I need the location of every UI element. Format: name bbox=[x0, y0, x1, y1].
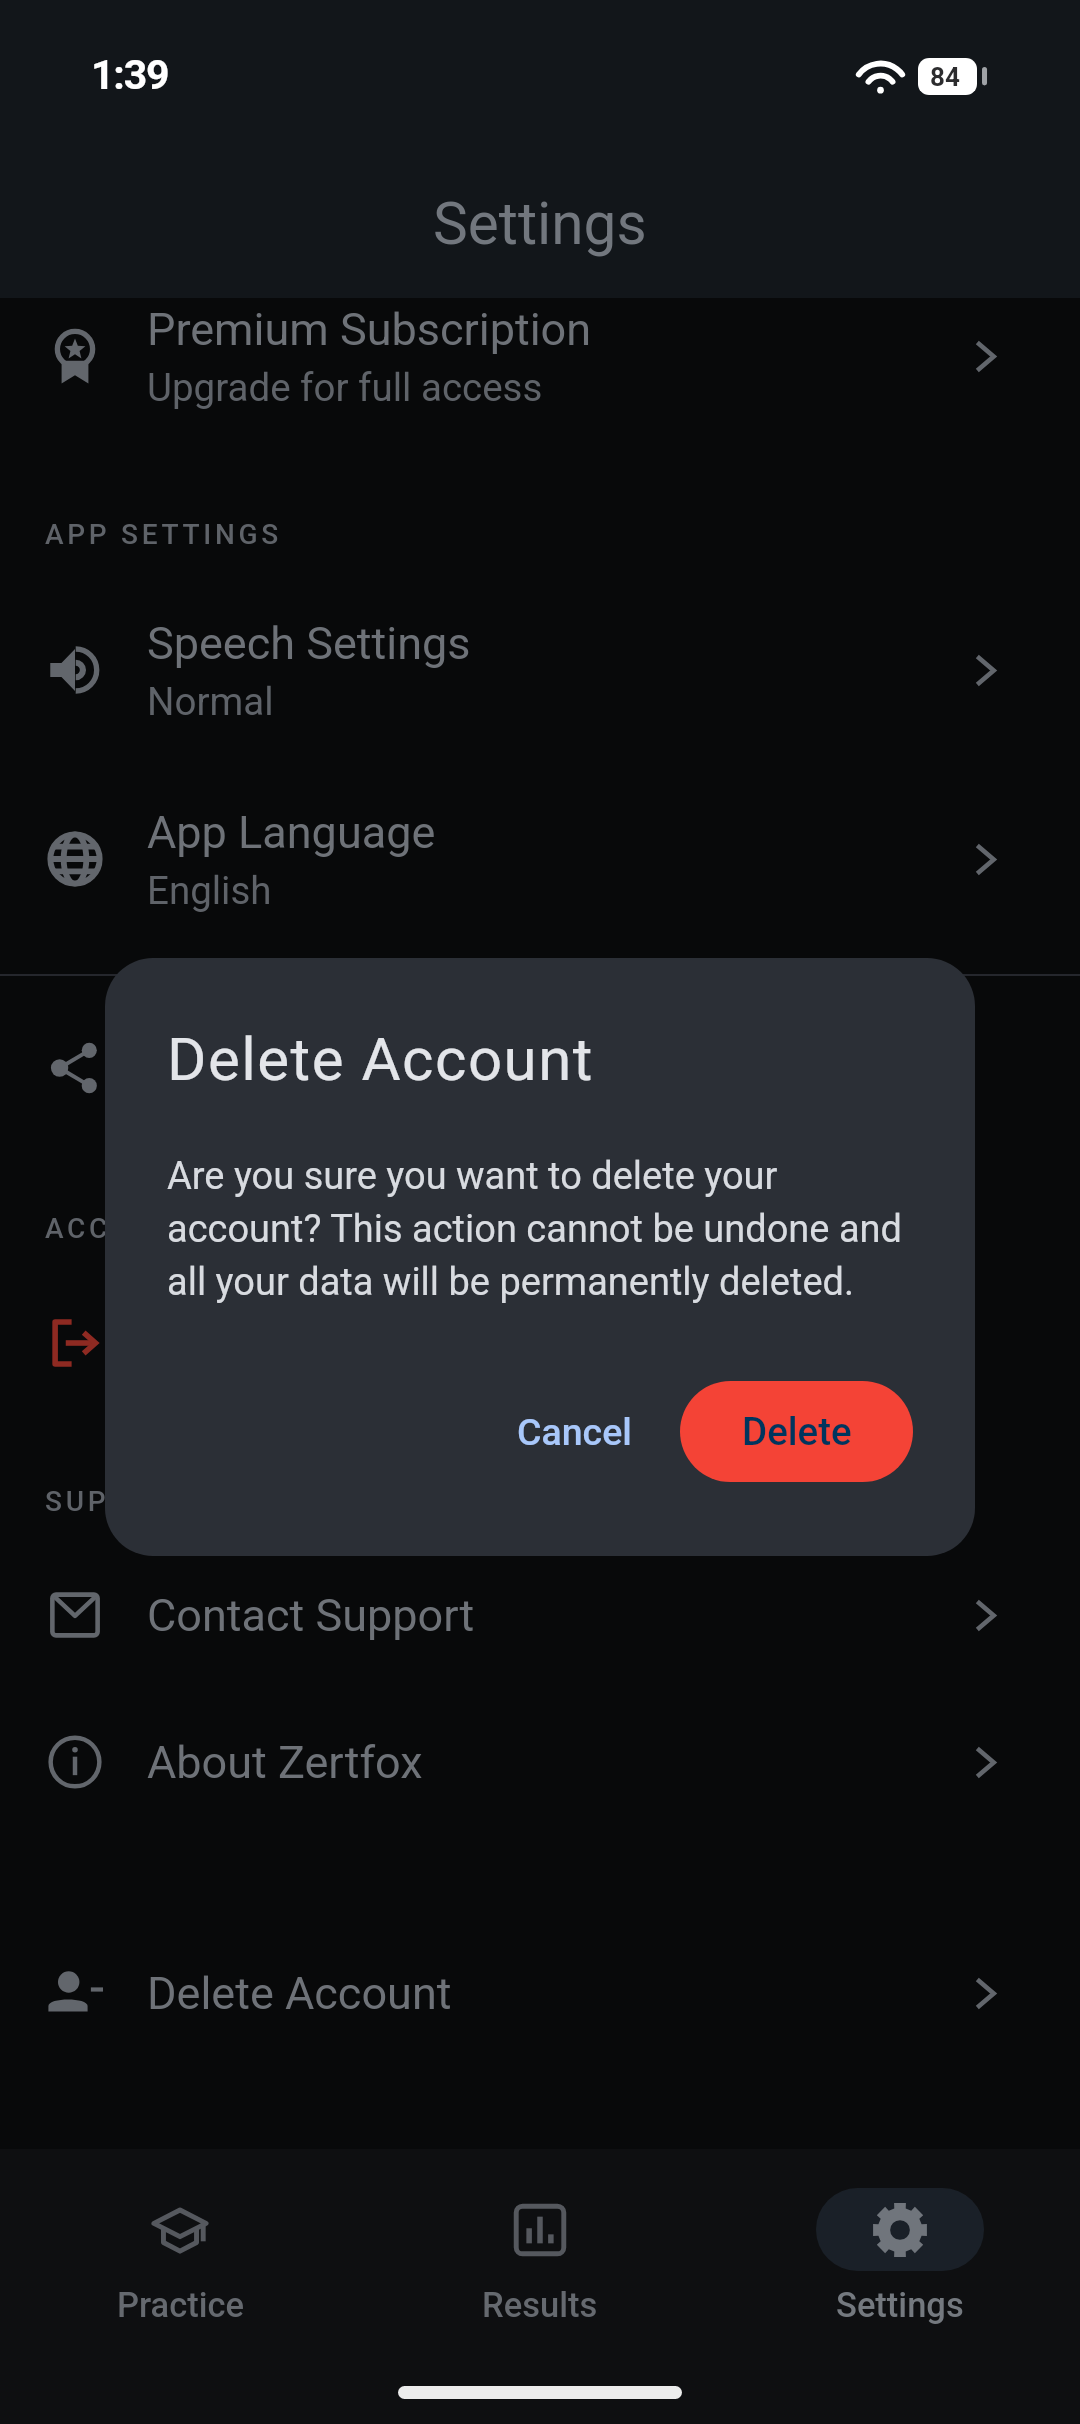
staticText: App Language bbox=[147, 806, 436, 859]
button[interactable]: Cancel bbox=[491, 1388, 658, 1476]
staticText: SUPPORT bbox=[45, 1485, 195, 1518]
button[interactable]: Delete bbox=[680, 1381, 913, 1482]
staticText: About Zertfox bbox=[147, 1736, 423, 1789]
button[interactable]: App Language bbox=[0, 793, 1080, 925]
staticText: Results bbox=[482, 2285, 598, 2325]
button[interactable]: Contact Support bbox=[0, 1549, 1080, 1681]
staticText: Speech Settings bbox=[147, 617, 471, 670]
button[interactable]: Speech Settings bbox=[0, 604, 1080, 736]
button[interactable]: About Zertfox bbox=[0, 1696, 1080, 1828]
button[interactable]: Settings bbox=[720, 2188, 1080, 2325]
staticText: Cancel bbox=[517, 1410, 632, 1454]
staticText: Practice bbox=[117, 2285, 244, 2325]
staticText: Tell your friends bbox=[147, 1077, 420, 1122]
staticText: English bbox=[147, 868, 272, 913]
staticText: 84 bbox=[930, 62, 960, 92]
button[interactable]: Results bbox=[360, 2188, 720, 2325]
staticText: ACCOUNT bbox=[45, 1212, 200, 1245]
button[interactable]: Sign Out bbox=[0, 1277, 1080, 1409]
staticText: APP SETTINGS bbox=[45, 518, 282, 551]
staticText: Delete Account bbox=[167, 1024, 594, 1094]
button[interactable]: Premium Subscription bbox=[0, 290, 1080, 422]
button[interactable]: Share App bbox=[0, 1002, 1080, 1134]
staticText: Settings bbox=[836, 2285, 964, 2325]
button[interactable]: Practice bbox=[0, 2188, 360, 2325]
staticText: Normal bbox=[147, 679, 274, 724]
staticText: 1:39 bbox=[91, 51, 169, 99]
staticText: Settings bbox=[433, 190, 647, 259]
button[interactable]: Delete Account bbox=[0, 1927, 1080, 2059]
staticText: Delete bbox=[742, 1409, 852, 1454]
staticText: Upgrade for full access bbox=[147, 365, 543, 410]
staticText: Share App bbox=[147, 1015, 353, 1068]
staticText: Contact Support bbox=[147, 1589, 475, 1642]
staticText: Delete Account bbox=[147, 1967, 452, 2020]
staticText: Are you sure you want to delete your acc… bbox=[167, 1154, 915, 1304]
staticText: Premium Subscription bbox=[147, 303, 592, 356]
